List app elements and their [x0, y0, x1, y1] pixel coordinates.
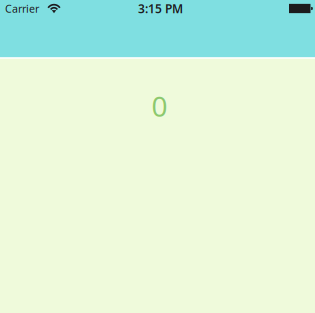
staticText: Carrier: [5, 1, 39, 16]
staticText: 3:15 PM: [138, 0, 183, 16]
button[interactable]: 0: [0, 59, 315, 313]
staticText: 0: [151, 87, 167, 125]
